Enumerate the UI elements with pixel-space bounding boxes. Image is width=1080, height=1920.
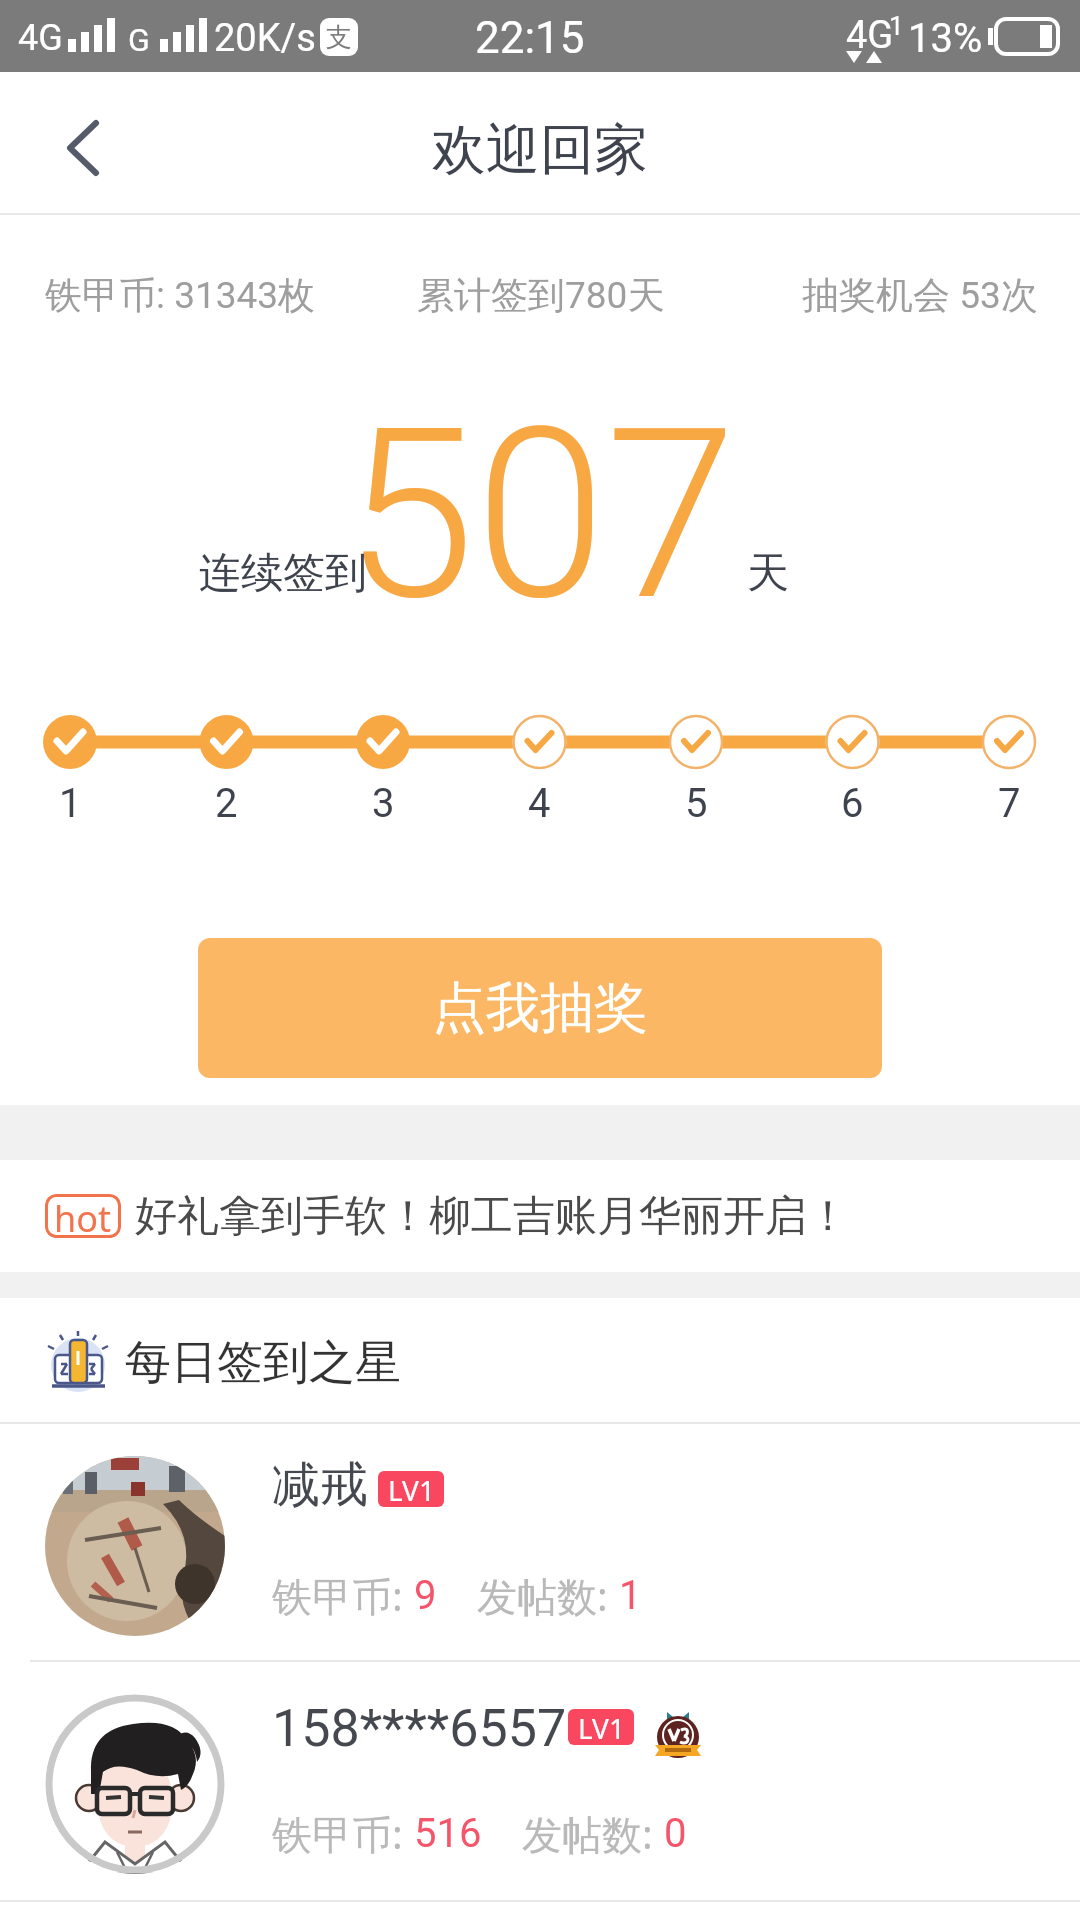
staticText: 507 [344,377,737,654]
staticText: 1 [59,780,82,827]
staticText: 铁甲币: 31343枚 [45,272,316,319]
staticText: 铁甲币: [272,1568,414,1623]
staticText: 每日签到之星 [125,1334,401,1392]
staticText: 6 [841,780,864,827]
staticText: LV1 [388,1471,435,1507]
staticText: 5 [685,780,708,827]
staticText: 欢迎回家 [432,116,648,184]
staticText: 158****6557 [272,1698,567,1759]
staticText: 支 [326,21,352,54]
staticText: 4G [846,13,894,58]
staticText: 4G [18,17,63,59]
staticText: 连续签到 [199,547,367,600]
button[interactable]: 点我抽奖 [198,938,882,1078]
staticText: 9 [414,1572,437,1619]
staticText: 3 [372,780,395,827]
button[interactable]: hot [0,1160,1080,1272]
staticText: 7 [998,780,1021,827]
staticText: LV1 [578,1709,625,1745]
button[interactable]: 减戒 [0,1424,1080,1662]
staticText: hot [54,1194,112,1238]
button[interactable]: 158****6557 [0,1662,1080,1900]
staticText: 0 [664,1810,687,1857]
staticText: 22:15 [475,12,585,64]
staticText: 1 [619,1572,642,1619]
staticText: 4 [528,780,551,827]
staticText: 累计签到780天 [417,272,665,319]
staticText: 天 [747,547,789,600]
staticText: 20K/s [214,16,316,61]
staticText: 好礼拿到手软！柳工吉账月华丽开启！ [135,1190,849,1243]
staticText: 2 [215,780,238,827]
staticText: 1 [889,11,904,41]
staticText: 13% [908,15,983,62]
staticText: 减戒 [272,1455,368,1515]
button[interactable] [30,97,140,192]
staticText: 516 [414,1810,482,1857]
staticText: 发帖数: [477,1568,619,1623]
staticText: G [128,21,150,59]
staticText: 点我抽奖 [432,974,648,1042]
staticText: 铁甲币: [272,1806,414,1861]
staticText: 发帖数: [522,1806,664,1861]
staticText: 抽奖机会 53次 [802,272,1038,319]
